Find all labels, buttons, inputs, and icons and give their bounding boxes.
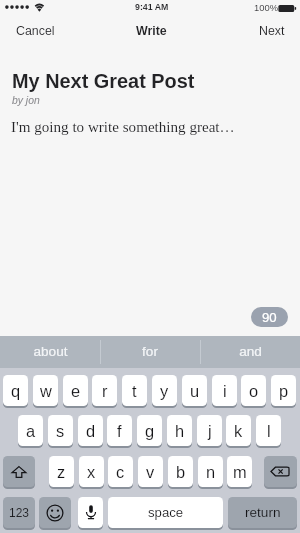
- button[interactable]: f: [107, 415, 132, 446]
- staticText: 123: [9, 506, 30, 519]
- button[interactable]: r: [92, 375, 117, 406]
- button[interactable]: 90: [251, 307, 288, 327]
- staticText: a: [26, 422, 36, 440]
- staticText: l: [267, 422, 271, 440]
- button[interactable]: for: [100, 336, 200, 368]
- button[interactable]: n: [198, 456, 223, 487]
- button[interactable]: i: [212, 375, 237, 406]
- staticText: 90: [262, 310, 277, 325]
- staticText: v: [146, 463, 155, 481]
- staticText: space: [148, 505, 184, 520]
- staticText: r: [102, 382, 108, 400]
- staticText: 100%: [254, 2, 279, 13]
- staticText: about: [33, 344, 68, 359]
- staticText: x: [87, 463, 96, 481]
- button[interactable]: z: [49, 456, 74, 487]
- button[interactable]: about: [0, 336, 100, 368]
- staticText: return: [245, 505, 281, 520]
- staticText: c: [116, 463, 125, 481]
- button[interactable]: k: [226, 415, 251, 446]
- staticText: e: [71, 382, 81, 400]
- button[interactable]: and: [200, 336, 300, 368]
- button[interactable]: v: [138, 456, 163, 487]
- button[interactable]: m: [227, 456, 252, 487]
- button[interactable]: a: [18, 415, 43, 446]
- button[interactable]: Shift: [3, 456, 35, 487]
- staticText: p: [279, 382, 289, 400]
- button[interactable]: c: [108, 456, 133, 487]
- staticText: t: [132, 382, 137, 400]
- staticText: z: [57, 463, 66, 481]
- button[interactable]: e: [63, 375, 88, 406]
- button[interactable]: Backspace: [264, 456, 297, 487]
- button[interactable]: d: [78, 415, 103, 446]
- button[interactable]: Emoji keyboard: [39, 497, 71, 528]
- staticText: I'm going to write something great…: [11, 119, 235, 136]
- staticText: n: [206, 463, 216, 481]
- staticText: b: [176, 463, 186, 481]
- button[interactable]: space: [108, 497, 223, 528]
- button[interactable]: s: [48, 415, 73, 446]
- staticText: q: [11, 382, 21, 400]
- staticText: h: [175, 422, 185, 440]
- staticText: f: [117, 422, 122, 440]
- staticText: Cancel: [16, 24, 55, 38]
- button[interactable]: 123: [3, 497, 35, 528]
- button[interactable]: l: [256, 415, 281, 446]
- staticText: Next: [259, 24, 285, 38]
- staticText: k: [234, 422, 243, 440]
- staticText: Write: [136, 24, 167, 38]
- staticText: y: [160, 382, 169, 400]
- button[interactable]: h: [167, 415, 192, 446]
- staticText: and: [239, 344, 262, 359]
- staticText: w: [40, 382, 52, 400]
- button[interactable]: u: [182, 375, 207, 406]
- button[interactable]: x: [79, 456, 104, 487]
- staticText: for: [142, 344, 158, 359]
- button[interactable]: b: [168, 456, 193, 487]
- button[interactable]: Next: [259, 19, 285, 42]
- staticText: 9:41 AM: [135, 2, 169, 12]
- button[interactable]: y: [152, 375, 177, 406]
- button[interactable]: o: [241, 375, 266, 406]
- staticText: d: [86, 422, 96, 440]
- button[interactable]: Dictate: [78, 497, 103, 528]
- staticText: j: [208, 422, 212, 440]
- button[interactable]: return: [228, 497, 297, 528]
- staticText: My Next Great Post: [12, 70, 195, 92]
- staticText: m: [233, 463, 247, 481]
- staticText: s: [56, 422, 65, 440]
- staticText: by jon: [12, 95, 40, 107]
- staticText: o: [249, 382, 259, 400]
- button[interactable]: w: [33, 375, 58, 406]
- button[interactable]: q: [3, 375, 28, 406]
- button[interactable]: j: [197, 415, 222, 446]
- button[interactable]: t: [122, 375, 147, 406]
- staticText: i: [223, 382, 227, 400]
- staticText: g: [145, 422, 155, 440]
- staticText: u: [190, 382, 200, 400]
- button[interactable]: Cancel: [16, 19, 55, 42]
- button[interactable]: p: [271, 375, 296, 406]
- button[interactable]: g: [137, 415, 162, 446]
